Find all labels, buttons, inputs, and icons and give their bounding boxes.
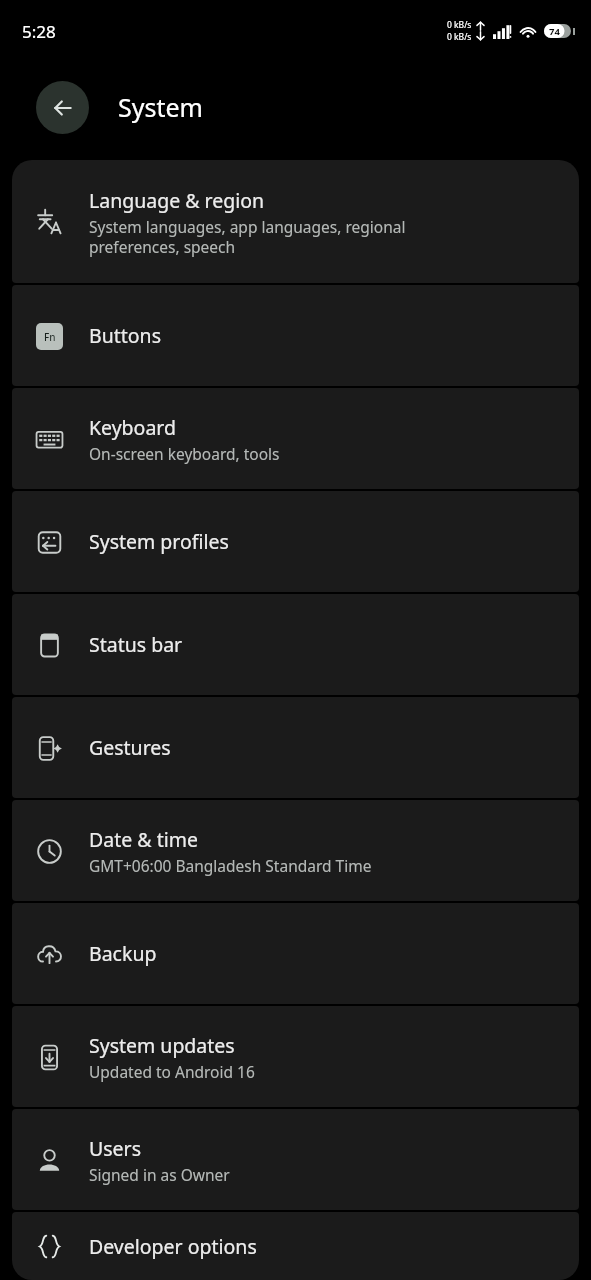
staticText: Users: [89, 1135, 141, 1162]
staticText: System languages, app languages, regiona…: [89, 216, 406, 257]
button[interactable]: Users: [12, 1109, 579, 1210]
button[interactable]: Gestures: [12, 697, 579, 798]
button[interactable]: Fn: [12, 285, 579, 386]
staticText: 0 kB/s: [447, 19, 472, 31]
staticText: Language & region: [89, 187, 265, 214]
staticText: Status bar: [89, 631, 183, 658]
staticText: Developer options: [89, 1233, 257, 1260]
staticText: On-screen keyboard, tools: [89, 443, 280, 464]
staticText: System: [118, 90, 203, 124]
button[interactable]: Language & region: [12, 160, 579, 283]
button[interactable]: System profiles: [12, 491, 579, 592]
staticText: 5:28: [22, 20, 56, 43]
staticText: System profiles: [89, 528, 229, 555]
button[interactable]: Date & time: [12, 800, 579, 901]
staticText: Updated to Android 16: [89, 1061, 255, 1082]
staticText: System updates: [89, 1032, 235, 1059]
button[interactable]: System updates: [12, 1006, 579, 1107]
staticText: Fn: [44, 330, 56, 344]
staticText: 0 kB/s: [447, 31, 472, 43]
button[interactable]: Keyboard: [12, 388, 579, 489]
staticText: Signed in as Owner: [89, 1164, 230, 1185]
button[interactable]: Developer options: [12, 1212, 579, 1280]
staticText: Keyboard: [89, 414, 177, 441]
staticText: Backup: [89, 940, 157, 967]
button[interactable]: Status bar: [12, 594, 579, 695]
staticText: Buttons: [89, 322, 161, 349]
staticText: 74: [549, 25, 560, 38]
staticText: Gestures: [89, 734, 171, 761]
staticText: GMT+06:00 Bangladesh Standard Time: [89, 855, 372, 876]
staticText: Date & time: [89, 826, 198, 853]
button[interactable]: Backup: [12, 903, 579, 1004]
button[interactable]: Back: [36, 81, 89, 134]
